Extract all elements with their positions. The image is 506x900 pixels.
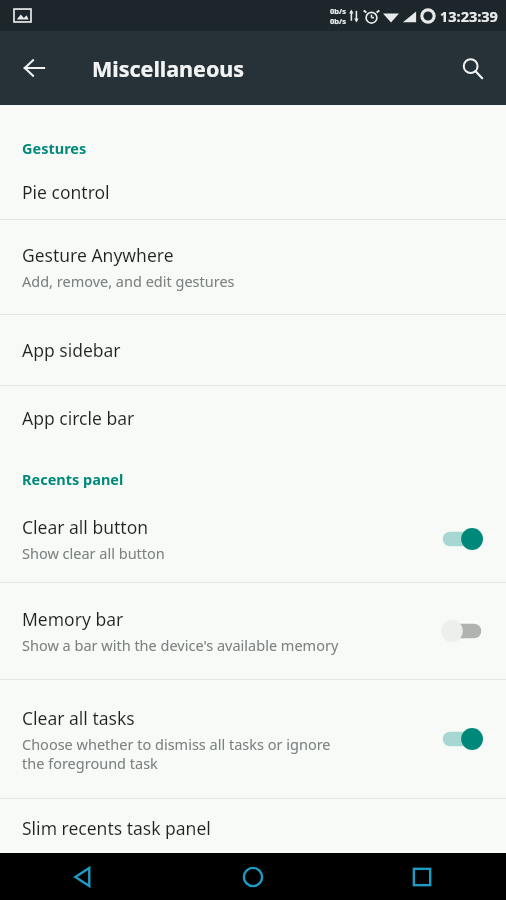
button[interactable]: Search bbox=[446, 42, 498, 94]
staticText: Pie control bbox=[22, 180, 110, 204]
staticText: Show a bar with the device's available m… bbox=[22, 635, 339, 655]
staticText: Memory bar bbox=[22, 607, 124, 631]
staticText: Show clear all button bbox=[22, 543, 165, 563]
button[interactable]: App circle bar bbox=[0, 386, 506, 450]
staticText: Miscellaneous bbox=[92, 54, 245, 83]
staticText: Clear all button bbox=[22, 515, 149, 539]
staticText: 0b/s bbox=[330, 16, 346, 26]
button[interactable]: Back bbox=[0, 853, 168, 900]
button[interactable]: Gesture Anywhere bbox=[0, 220, 506, 314]
button[interactable]: Memory bar bbox=[0, 583, 506, 679]
staticText: Clear all tasks bbox=[22, 706, 135, 730]
button[interactable]: Clear all button bbox=[0, 496, 506, 582]
staticText: 0b/s bbox=[330, 6, 346, 16]
staticText: Gestures bbox=[22, 138, 87, 158]
staticText: App circle bar bbox=[22, 406, 135, 430]
button[interactable]: Home bbox=[168, 853, 337, 900]
button[interactable]: Back bbox=[8, 42, 60, 94]
staticText: Add, remove, and edit gestures bbox=[22, 271, 235, 291]
button[interactable]: Pie control bbox=[0, 165, 506, 219]
button[interactable]: Recents bbox=[337, 853, 506, 900]
staticText: Recents panel bbox=[22, 469, 124, 489]
staticText: 13:23:39 bbox=[440, 6, 498, 26]
staticText: Gesture Anywhere bbox=[22, 243, 174, 267]
staticText: App sidebar bbox=[22, 338, 121, 362]
staticText: Slim recents task panel bbox=[22, 816, 211, 839]
button[interactable]: Clear all tasks bbox=[0, 680, 506, 798]
button[interactable]: Slim recents task panel bbox=[0, 799, 506, 839]
button[interactable]: App sidebar bbox=[0, 315, 506, 385]
staticText: Choose whether to dismiss all tasks or i… bbox=[22, 734, 331, 773]
